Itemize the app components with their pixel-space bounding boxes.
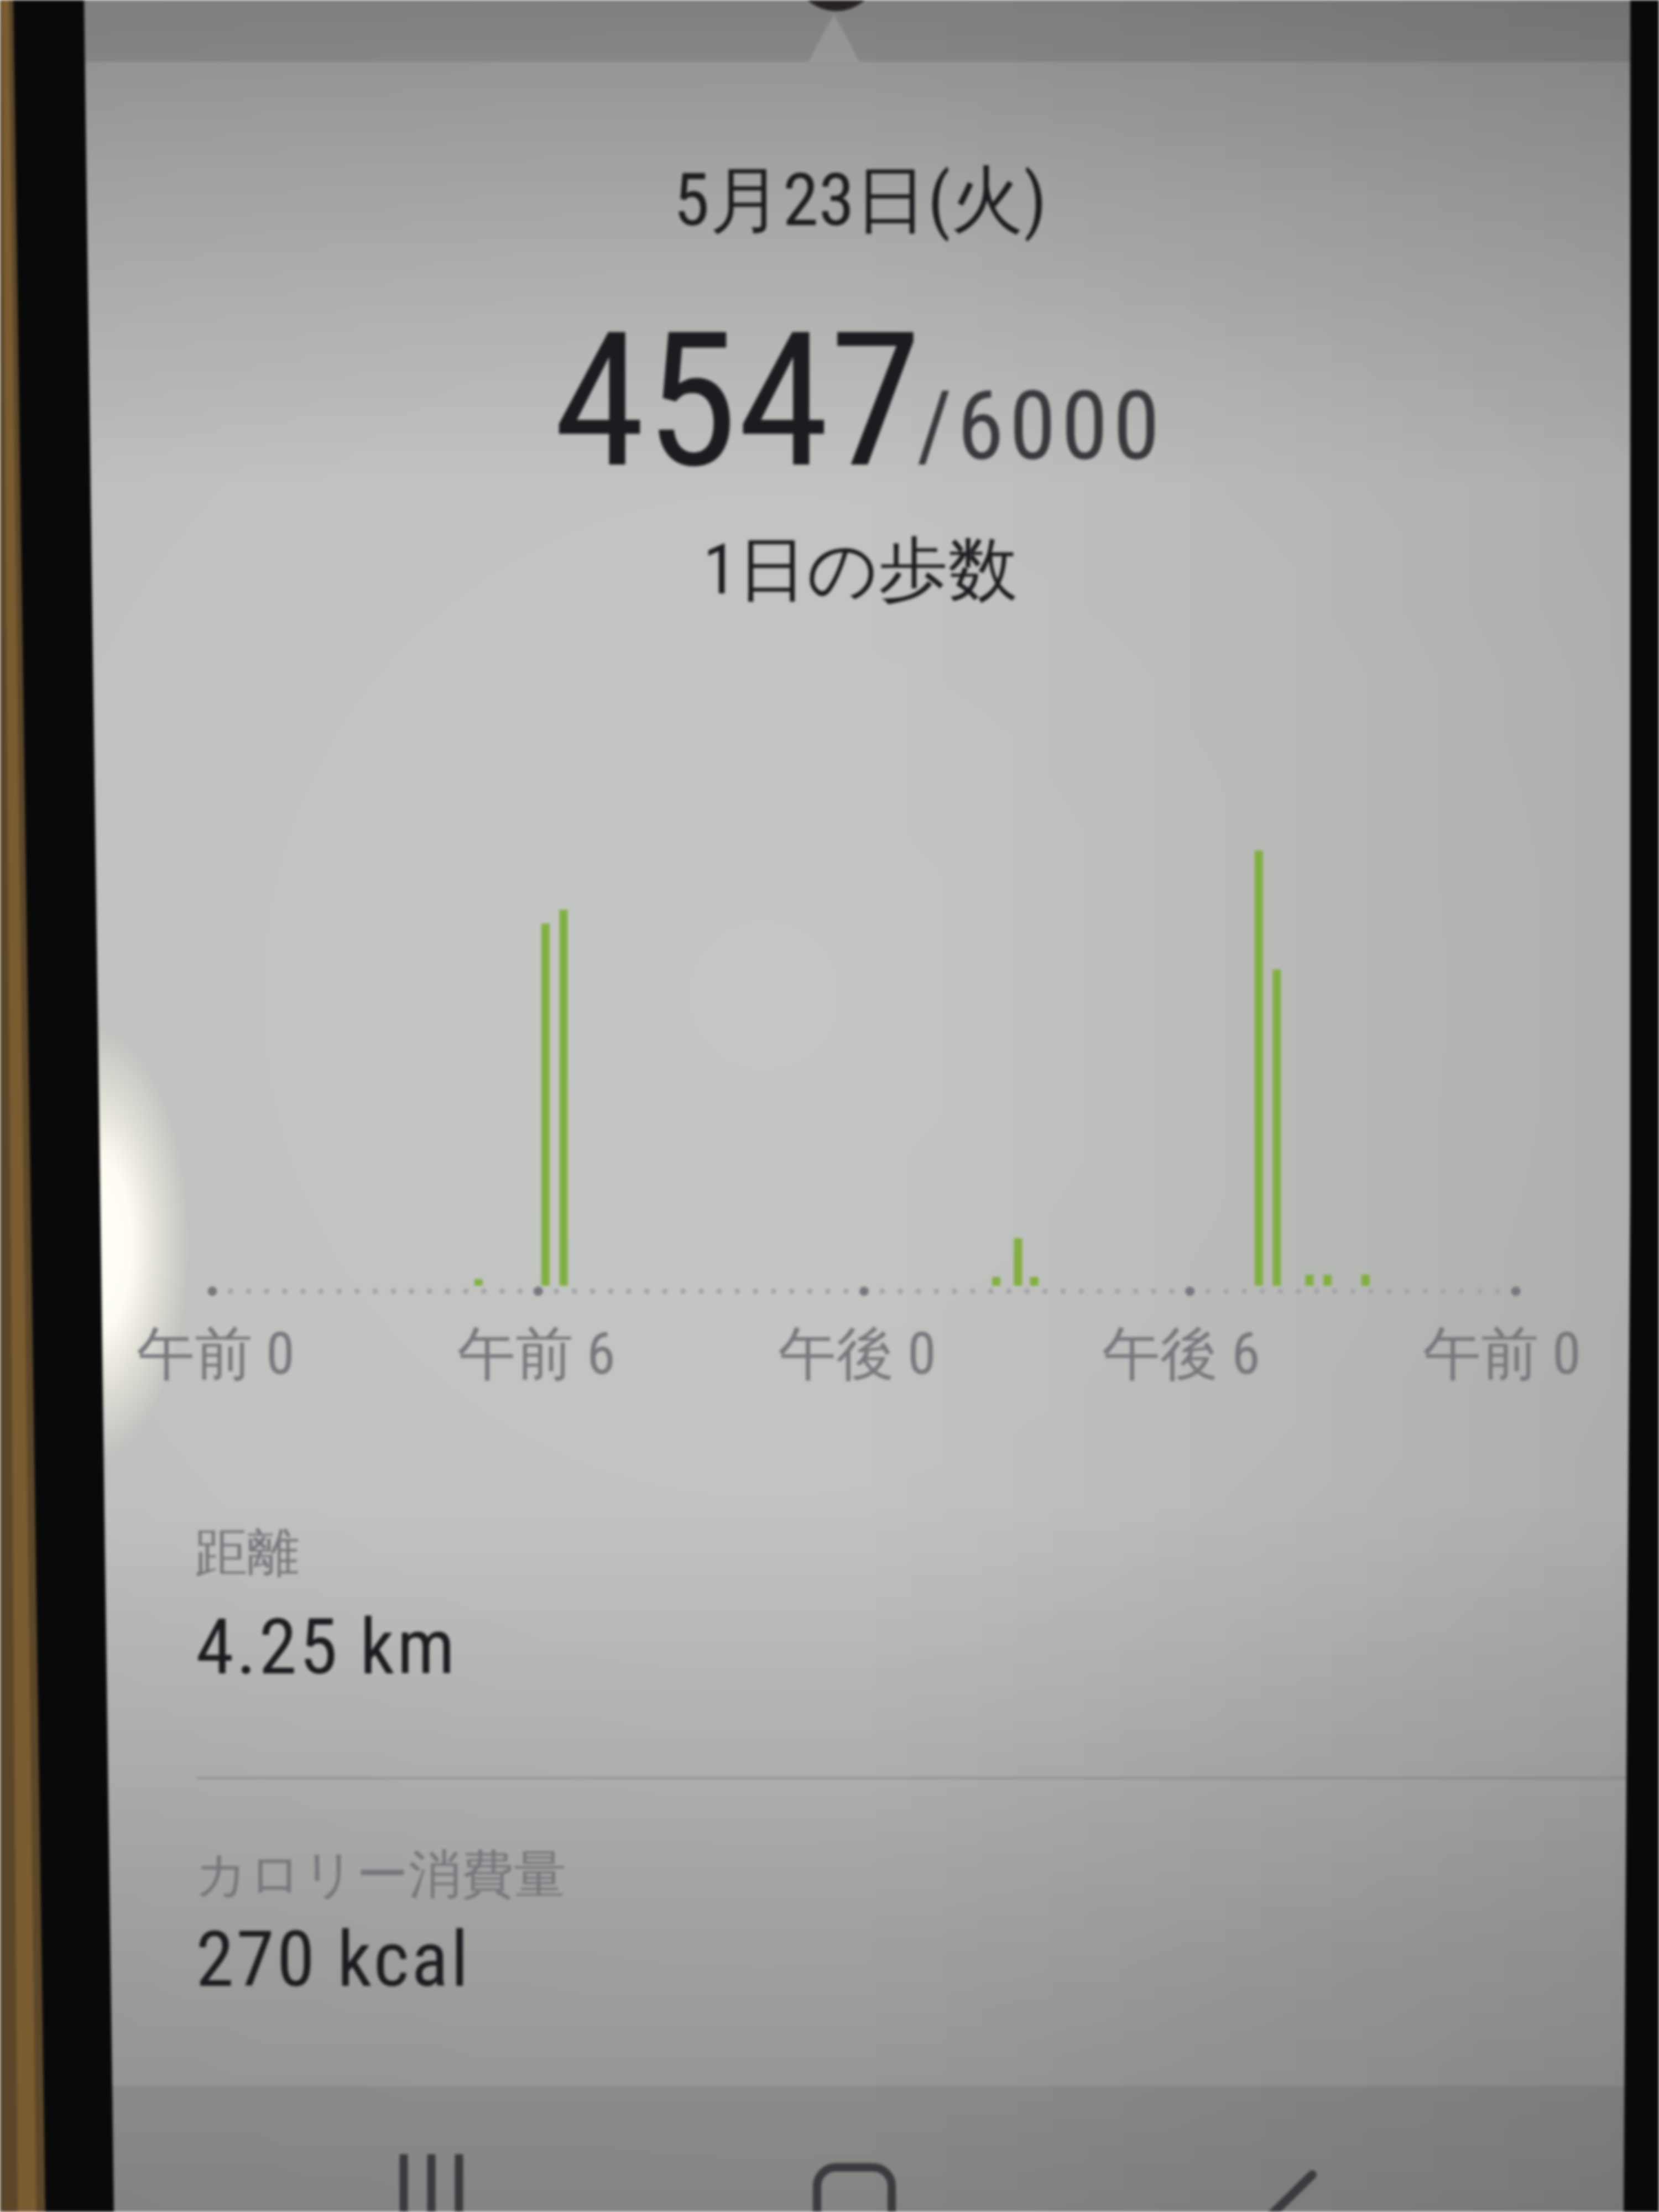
staticText: 午前 0 bbox=[1423, 1318, 1581, 1391]
button[interactable]: カロリー消費量 bbox=[84, 1781, 1630, 2085]
staticText: 1日の歩数 bbox=[703, 526, 1018, 614]
button[interactable]: 距離 bbox=[84, 1465, 1630, 1775]
staticText: 午後 0 bbox=[778, 1318, 936, 1391]
staticText: 午前 0 bbox=[137, 1318, 295, 1391]
staticText: 270 kcal bbox=[196, 1914, 471, 2005]
staticText: 午前 6 bbox=[457, 1318, 615, 1391]
staticText: /6000 bbox=[917, 370, 1165, 482]
staticText: 4547 bbox=[554, 291, 922, 510]
button[interactable]: 5月23日(火) bbox=[84, 138, 1630, 636]
staticText: 5月23日(火) bbox=[674, 155, 1047, 247]
staticText: 4.25 km bbox=[196, 1601, 457, 1692]
button[interactable]: Back bbox=[1208, 2107, 1363, 2212]
staticText: カロリー消費量 bbox=[195, 1842, 566, 1908]
staticText: 距離 bbox=[195, 1520, 300, 1587]
button[interactable]: Recent apps bbox=[354, 2107, 509, 2212]
button[interactable]: Hourly step chart bbox=[84, 691, 1630, 1410]
staticText: 午後 6 bbox=[1102, 1318, 1260, 1391]
button[interactable]: Home bbox=[777, 2107, 932, 2212]
